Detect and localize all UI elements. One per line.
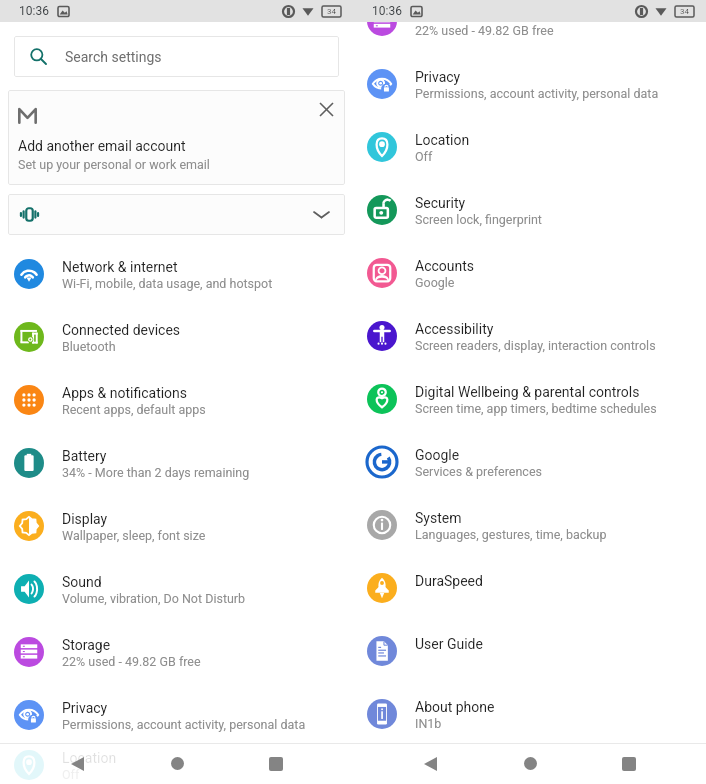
button[interactable]: Privacy xyxy=(353,52,706,115)
staticText: Recent apps, default apps xyxy=(62,402,206,417)
staticText: 10:36 xyxy=(372,4,402,18)
button[interactable]: System xyxy=(353,493,706,556)
staticText: Add another email account xyxy=(18,138,186,154)
button[interactable] xyxy=(8,194,345,235)
button[interactable]: Network & internet xyxy=(0,242,353,305)
button[interactable]: Search settings xyxy=(14,36,339,77)
staticText: Digital Wellbeing & parental controls xyxy=(415,384,640,400)
button[interactable]: Security xyxy=(353,178,706,241)
button[interactable]: Recent apps xyxy=(253,743,299,784)
staticText: 34% - More than 2 days remaining xyxy=(62,465,250,480)
staticText: System xyxy=(415,510,462,526)
staticText: IN1b xyxy=(415,716,442,731)
staticText: Google xyxy=(415,447,460,463)
staticText: Bluetooth xyxy=(62,339,116,354)
button[interactable]: Storage xyxy=(0,620,353,683)
staticText: DuraSpeed xyxy=(415,573,483,589)
button[interactable]: About phone xyxy=(353,682,706,745)
staticText: Services & preferences xyxy=(415,464,542,479)
staticText: Storage xyxy=(62,637,111,653)
button[interactable]: Sound xyxy=(0,557,353,620)
button[interactable]: Digital Wellbeing & parental controls xyxy=(353,367,706,430)
staticText: Storage xyxy=(415,6,464,22)
button[interactable]: Battery xyxy=(0,431,353,494)
staticText: Accounts xyxy=(415,258,475,274)
button[interactable]: Location xyxy=(353,115,706,178)
staticText: Security xyxy=(415,195,466,211)
staticText: Off xyxy=(415,149,433,164)
staticText: Location xyxy=(415,132,470,148)
button[interactable]: Apps & notifications xyxy=(0,368,353,431)
staticText: Google xyxy=(415,275,455,290)
button[interactable]: Accounts xyxy=(353,241,706,304)
staticText: 34 xyxy=(327,7,336,16)
staticText: Wi-Fi, mobile, data usage, and hotspot xyxy=(62,276,273,291)
staticText: Apps & notifications xyxy=(62,385,188,401)
button[interactable]: Home xyxy=(154,743,200,784)
staticText: 10:36 xyxy=(19,4,49,18)
staticText: User Guide xyxy=(415,636,483,652)
staticText: 22% used - 49.82 GB free xyxy=(62,654,201,669)
staticText: Off xyxy=(62,767,80,782)
button[interactable]: Google xyxy=(353,430,706,493)
staticText: Screen lock, fingerprint xyxy=(415,212,542,227)
staticText: Languages, gestures, time, backup xyxy=(415,527,607,542)
staticText: Permissions, account activity, personal … xyxy=(415,86,659,101)
button[interactable]: DuraSpeed xyxy=(353,556,706,619)
button[interactable]: Connected devices xyxy=(0,305,353,368)
staticText: 22% used - 49.82 GB free xyxy=(415,23,554,38)
button[interactable]: Location xyxy=(0,746,353,784)
staticText: Search settings xyxy=(65,49,162,65)
button[interactable]: Dismiss xyxy=(8,90,345,185)
button[interactable]: Accessibility xyxy=(353,304,706,367)
staticText: Screen readers, display, interaction con… xyxy=(415,338,656,353)
staticText: Screen time, app timers, bedtime schedul… xyxy=(415,401,657,416)
staticText: Connected devices xyxy=(62,322,181,338)
button[interactable]: Privacy xyxy=(0,683,353,746)
button[interactable]: Back xyxy=(54,743,100,784)
staticText: Location xyxy=(62,750,117,766)
button[interactable]: User Guide xyxy=(353,619,706,682)
button[interactable]: Back xyxy=(407,743,453,784)
staticText: Battery xyxy=(62,448,107,464)
staticText: Permissions, account activity, personal … xyxy=(62,717,306,732)
staticText: Set up your personal or work email xyxy=(18,157,210,172)
button[interactable]: Dismiss xyxy=(313,96,339,122)
staticText: Network & internet xyxy=(62,259,178,275)
staticText: 34 xyxy=(680,7,689,16)
button[interactable]: Recent apps xyxy=(606,743,652,784)
button[interactable]: Home xyxy=(507,743,553,784)
staticText: Volume, vibration, Do Not Disturb xyxy=(62,591,246,606)
staticText: Wallpaper, sleep, font size xyxy=(62,528,206,543)
button[interactable]: Storage xyxy=(353,0,706,52)
staticText: Sound xyxy=(62,574,102,590)
staticText: Privacy xyxy=(62,700,108,716)
staticText: Display xyxy=(62,511,108,527)
button[interactable]: Display xyxy=(0,494,353,557)
staticText: About phone xyxy=(415,699,495,715)
staticText: Accessibility xyxy=(415,321,494,337)
staticText: Privacy xyxy=(415,69,461,85)
